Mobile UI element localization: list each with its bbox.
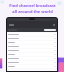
button[interactable]: [8, 49, 56, 52]
staticText: all around the world: [12, 9, 53, 14]
button[interactable]: [8, 53, 56, 56]
button[interactable]: [8, 33, 56, 36]
button[interactable]: [8, 61, 56, 64]
button[interactable]: [8, 65, 56, 68]
button[interactable]: [8, 45, 56, 48]
button[interactable]: [8, 41, 56, 44]
button[interactable]: [9, 24, 14, 26]
staticText: Find channel broadcast: [9, 3, 56, 8]
button[interactable]: [8, 37, 56, 40]
button[interactable]: [8, 57, 56, 60]
button[interactable]: [44, 29, 56, 31]
